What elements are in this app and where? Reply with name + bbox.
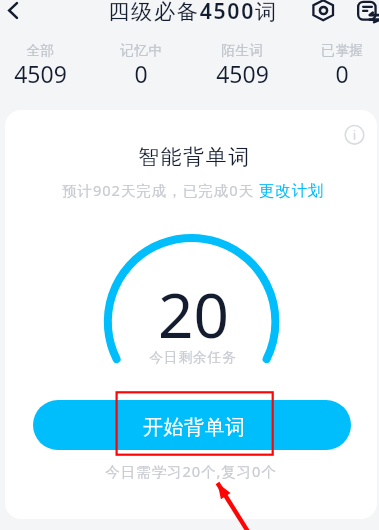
button[interactable]: 陌生词 xyxy=(197,38,287,88)
button[interactable]: 开始背单词 xyxy=(33,400,351,450)
button[interactable]: Switch book xyxy=(353,0,379,26)
staticText: 0 xyxy=(134,58,148,89)
staticText: 开始背单词 xyxy=(143,415,246,440)
staticText: 4509 xyxy=(14,58,67,89)
staticText: 今日需学习20个,复习0个 xyxy=(105,461,277,481)
button[interactable]: 记忆中 xyxy=(96,38,186,88)
staticText: 记忆中 xyxy=(120,42,163,59)
staticText: 智能背单词 xyxy=(138,144,251,170)
staticText: 今日剩余任务 xyxy=(149,349,237,366)
staticText: 四级必备4500词 xyxy=(108,0,278,24)
button[interactable]: 更改计划 xyxy=(259,181,324,201)
button[interactable]: Settings xyxy=(311,0,336,24)
staticText: 更改计划 xyxy=(259,181,324,201)
button[interactable]: Information xyxy=(344,124,365,145)
button[interactable]: 全部 xyxy=(0,38,85,88)
staticText: 预计902天完成，已完成0天 xyxy=(62,180,254,200)
staticText: 0 xyxy=(335,58,349,89)
staticText: 20 xyxy=(158,272,229,356)
staticText: 4509 xyxy=(216,58,269,89)
button[interactable]: 已掌握 xyxy=(297,38,379,88)
staticText: 全部 xyxy=(26,42,55,59)
button[interactable]: Back xyxy=(0,0,34,24)
staticText: 已掌握 xyxy=(321,42,364,59)
staticText: 陌生词 xyxy=(221,42,264,59)
